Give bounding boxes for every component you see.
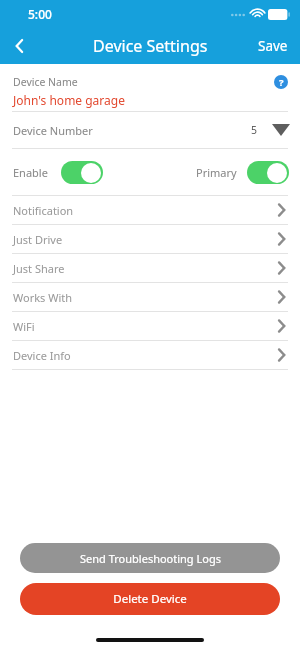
staticText: 5:00 — [28, 6, 52, 22]
button[interactable]: Notification — [0, 196, 300, 224]
staticText: WiFi — [13, 319, 35, 334]
staticText: Just Drive — [13, 232, 63, 247]
button[interactable]: Help — [272, 73, 290, 91]
staticText: Notification — [13, 203, 74, 218]
staticText: John's home garage — [13, 92, 125, 108]
button[interactable]: Send Troubleshooting Logs — [20, 543, 280, 573]
button[interactable]: Just Drive — [0, 225, 300, 253]
staticText: Primary — [196, 165, 237, 180]
button[interactable]: Device Info — [0, 341, 300, 369]
staticText: Works With — [13, 290, 73, 305]
staticText: 5 — [251, 123, 258, 137]
button[interactable]: Works With — [0, 283, 300, 311]
staticText: ? — [279, 76, 284, 89]
staticText: Delete Device — [113, 591, 187, 607]
staticText: Device Number — [13, 123, 93, 138]
staticText: Save — [258, 37, 288, 55]
button[interactable]: Delete Device — [20, 583, 280, 615]
button[interactable]: WiFi — [0, 312, 300, 340]
staticText: Send Troubleshooting Logs — [80, 551, 221, 566]
button[interactable]: Back — [0, 28, 40, 64]
staticText: Device Info — [13, 348, 71, 363]
staticText: Device Name — [13, 75, 78, 89]
staticText: Just Share — [13, 261, 65, 276]
staticText: Device Settings — [93, 35, 208, 57]
staticText: Enable — [13, 165, 48, 180]
button[interactable]: Toggle — [247, 161, 289, 184]
button[interactable]: Just Share — [0, 254, 300, 282]
button[interactable]: Device Number — [0, 112, 300, 148]
button[interactable]: Toggle — [61, 161, 103, 184]
button[interactable]: Save — [246, 31, 300, 61]
